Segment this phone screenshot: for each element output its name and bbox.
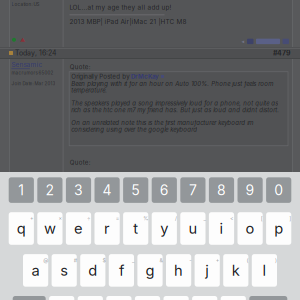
staticText: ) [275,257,277,264]
button[interactable]: r [94,212,120,245]
staticText: ▲ [20,36,25,43]
staticText: r [104,220,110,237]
button[interactable]: l [252,254,277,287]
button[interactable]: c [106,296,131,300]
staticText: 3 [74,182,83,198]
button[interactable]: 0 [266,177,291,203]
staticText: s [60,261,68,279]
staticText: On an unrelated note this is the first m… [71,119,253,133]
button[interactable]: x [78,296,103,300]
button[interactable]: o [237,212,263,245]
staticText: a [32,261,40,279]
staticText: @ [43,257,48,264]
button[interactable]: h [166,254,191,287]
staticText: + [216,257,220,264]
staticText: l [262,261,266,279]
staticText: 9 [246,182,255,198]
staticText: Today, 16:24 [15,49,56,57]
button[interactable]: e [66,212,91,245]
staticText: Been playing with it for an hour on Auto… [71,80,273,94]
button[interactable]: t [123,212,148,245]
staticText: Originally Posted by [71,73,129,80]
staticText: × [58,215,62,222]
staticText: i [219,220,223,237]
staticText: ◂ [241,38,244,44]
staticText: % [143,215,148,222]
button[interactable]: 6 [152,177,177,203]
staticText: _ [132,257,134,264]
button[interactable]: f [109,254,134,287]
button[interactable]: 2 [37,177,62,203]
button[interactable]: s [52,254,77,287]
button[interactable]: b [163,296,189,300]
staticText: ÷ [87,215,91,222]
staticText: #479 [273,49,291,57]
staticText: y [160,220,168,237]
button[interactable]: 8 [209,177,234,203]
button[interactable]: 1 [9,177,34,203]
button[interactable]: d [80,254,105,287]
staticText: - [189,257,191,264]
staticText: f [119,261,124,279]
staticText: 7 [189,182,197,198]
button[interactable]: i [209,212,234,245]
staticText: p [274,220,283,237]
staticText: ' [129,299,131,300]
button[interactable]: j [195,254,220,287]
staticText: 6 [160,182,169,198]
staticText: = [116,215,120,222]
staticText: _ [203,215,205,222]
staticText: $ [102,257,105,264]
button[interactable]: key [249,296,287,300]
button[interactable]: m [221,296,246,300]
button[interactable]: p [266,212,291,245]
button[interactable]: y [152,212,177,245]
staticText: ( [246,257,248,264]
staticText: & [160,257,163,264]
button[interactable]: u [180,212,205,245]
staticText: Join Date: Mar 2013 [11,81,55,86]
staticText: 0 [274,182,283,198]
staticText: 2 [45,182,54,198]
staticText: g [145,261,154,279]
staticText: 8 [217,182,226,198]
staticText: < [230,215,234,222]
staticText: [ [261,215,263,222]
button[interactable]: 5 [123,177,148,203]
staticText: Quote: [70,159,91,166]
staticText: ] [289,215,291,222]
button[interactable]: w [37,212,62,245]
button[interactable]: 7 [180,177,205,203]
staticText: # [74,257,77,264]
staticText: ; [187,299,189,300]
staticText: u [188,220,197,237]
staticText: + [30,215,34,222]
button[interactable]: 9 [237,177,263,203]
button[interactable]: a [23,254,48,287]
button[interactable]: k [223,254,248,287]
staticText: Quote: [70,63,91,71]
staticText: t [133,220,138,237]
button[interactable]: key [13,296,46,300]
staticText: LOL...at my age they all add up! [69,3,171,11]
staticText: h [174,261,183,279]
staticText: w [44,220,56,237]
button[interactable]: 4 [94,177,120,203]
staticText: 2013 MBP| iPad Air|iMac 21 |HTC M8 [69,18,186,25]
button[interactable]: q [9,212,34,245]
staticText: e [74,220,83,237]
button[interactable]: z [49,296,74,300]
staticText: q [17,220,26,237]
button[interactable]: g [137,254,163,287]
button[interactable]: 3 [66,177,91,203]
staticText: / [175,215,177,222]
staticText: o [246,220,255,237]
button[interactable]: n [192,296,217,300]
staticText: k [232,261,240,279]
staticText: d [88,261,97,279]
button[interactable]: v [135,296,160,300]
